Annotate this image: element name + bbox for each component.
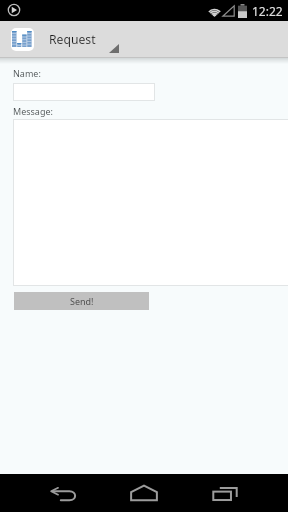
button[interactable] (13, 119, 288, 286)
button[interactable]: Home (118, 474, 170, 512)
staticText: 12:22 (252, 3, 283, 19)
staticText: Message: (13, 105, 53, 117)
other: Open navigation list (104, 21, 122, 57)
button[interactable]: Recents (199, 474, 251, 512)
button[interactable]: Back (37, 474, 89, 512)
button[interactable]: Send! (14, 292, 149, 310)
button[interactable] (13, 83, 155, 101)
staticText: Send! (70, 295, 94, 307)
staticText: Request (49, 31, 96, 48)
button[interactable]: Request (0, 21, 136, 57)
staticText: Name: (13, 67, 41, 79)
